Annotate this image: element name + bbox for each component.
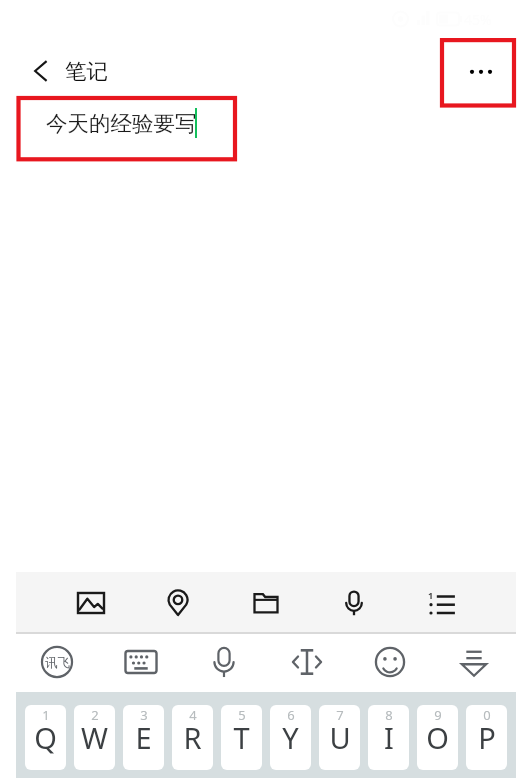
staticText: O — [426, 718, 449, 757]
staticText: 7 — [336, 706, 344, 724]
button[interactable]: 4 — [172, 705, 213, 770]
staticText: 2 — [91, 706, 99, 724]
button[interactable]: Move cursor — [283, 638, 331, 686]
button[interactable]: Voice input — [332, 581, 376, 625]
button[interactable]: 9 — [417, 705, 458, 770]
staticText: 讯飞 — [45, 655, 70, 671]
button[interactable]: 8 — [368, 705, 409, 770]
staticText: 3 — [140, 706, 148, 724]
staticText: P — [478, 718, 496, 757]
staticText: 笔记 — [65, 58, 108, 85]
button[interactable]: Ordered list — [420, 582, 464, 626]
staticText: W — [81, 718, 108, 757]
staticText: 今天的经验要写 — [46, 110, 197, 137]
button[interactable]: 5 — [221, 705, 262, 770]
staticText: R — [183, 718, 202, 757]
button[interactable]: Insert file — [244, 581, 288, 625]
button[interactable]: More options — [444, 42, 512, 102]
button[interactable]: 2 — [74, 705, 115, 770]
staticText: 1 — [42, 706, 50, 724]
button[interactable]: 3 — [123, 705, 164, 770]
button[interactable]: 6 — [270, 705, 311, 770]
button[interactable]: Emoji — [366, 638, 414, 686]
staticText: U — [329, 718, 351, 757]
button[interactable]: 1 — [25, 705, 66, 770]
button[interactable]: Hide keyboard — [450, 638, 498, 686]
staticText: 5 — [238, 706, 246, 724]
staticText: 9 — [434, 706, 442, 724]
staticText: T — [233, 718, 250, 757]
button[interactable]: Insert location — [156, 581, 200, 625]
button[interactable]: Voice typing — [200, 638, 248, 686]
staticText: Y — [282, 718, 299, 757]
staticText: 6 — [287, 706, 295, 724]
staticText: I — [384, 718, 394, 757]
other: Back — [34, 60, 48, 82]
button[interactable]: 7 — [319, 705, 360, 770]
button[interactable]: Keyboard layout — [117, 638, 165, 686]
button[interactable]: Input method — [33, 638, 81, 686]
staticText: 0 — [483, 706, 491, 724]
staticText: Q — [34, 718, 57, 757]
staticText: E — [135, 718, 152, 757]
staticText: 4 — [189, 706, 197, 724]
staticText: 8 — [385, 706, 393, 724]
button[interactable]: Insert image — [69, 581, 113, 625]
staticText: 1 — [428, 589, 434, 601]
button[interactable]: Back — [24, 50, 122, 92]
button[interactable]: 0 — [466, 705, 507, 770]
button[interactable]: 今天的经验要写 — [16, 96, 508, 566]
